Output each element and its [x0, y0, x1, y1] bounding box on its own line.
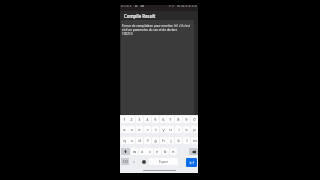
staticText: p: [193, 127, 196, 132]
button[interactable]: f: [144, 137, 151, 144]
staticText: s: [131, 138, 133, 143]
button[interactable]: h: [160, 137, 167, 144]
button[interactable]: n: [170, 148, 177, 155]
staticText: n: [172, 149, 175, 154]
button[interactable]: g: [152, 137, 159, 144]
staticText: r: [147, 127, 149, 132]
button[interactable]: i: [175, 126, 182, 133]
button[interactable]: u: [167, 126, 174, 133]
button[interactable]: Erreur de compilation pour emettre 'rit'…: [121, 20, 194, 118]
button[interactable]: b: [162, 148, 169, 155]
staticText: k: [177, 138, 180, 143]
staticText: j: [170, 138, 172, 143]
staticText: 4: [146, 117, 149, 122]
button[interactable]: c: [146, 148, 153, 155]
button[interactable]: s: [128, 137, 135, 144]
staticText: g: [154, 138, 157, 143]
button[interactable]: 0: [191, 116, 198, 123]
staticText: 5: [154, 117, 157, 122]
staticText: m: [193, 138, 197, 143]
button[interactable]: Shift: [121, 148, 130, 155]
staticText: 3: [138, 117, 141, 122]
button[interactable]: l: [183, 137, 190, 144]
button[interactable]: v: [154, 148, 161, 155]
staticText: e: [138, 127, 141, 132]
staticText: q: [123, 138, 126, 143]
button[interactable]: Enter: [186, 158, 197, 167]
button[interactable]: t: [152, 126, 159, 133]
staticText: t: [155, 127, 157, 132]
staticText: v: [156, 149, 159, 154]
staticText: f: [147, 138, 149, 143]
button[interactable]: Backspace: [189, 148, 198, 155]
staticText: w: [133, 149, 137, 154]
staticText: 2: [130, 117, 133, 122]
button[interactable]: w: [131, 148, 138, 155]
staticText: a: [123, 127, 126, 132]
button[interactable]: 1: [121, 116, 128, 123]
button[interactable]: q: [121, 137, 128, 144]
button[interactable]: 8: [175, 116, 182, 123]
staticText: c: [149, 149, 151, 154]
staticText: y: [162, 127, 165, 132]
button[interactable]: y: [160, 126, 167, 133]
staticText: d: [138, 138, 141, 143]
button[interactable]: r: [144, 126, 151, 133]
button[interactable]: Emoji keyboard: [140, 158, 147, 165]
button[interactable]: x: [139, 148, 146, 155]
button[interactable]: a: [121, 126, 128, 133]
button[interactable]: Espace: [149, 158, 178, 165]
staticText: u: [169, 127, 172, 132]
button[interactable]: 4: [144, 116, 151, 123]
staticText: 1: [123, 117, 126, 122]
button[interactable]: z: [128, 126, 135, 133]
button[interactable]: o: [183, 126, 190, 133]
staticText: b: [164, 149, 167, 154]
button[interactable]: Compile Result: [120, 11, 198, 24]
staticText: 0: [193, 117, 196, 122]
staticText: 123: [123, 160, 128, 164]
staticText: Compile Result: [124, 13, 156, 19]
staticText: o: [185, 127, 188, 132]
staticText: h: [162, 138, 165, 143]
button[interactable]: 123: [121, 158, 129, 165]
staticText: i: [178, 127, 180, 132]
button[interactable]: k: [175, 137, 182, 144]
staticText: 6: [162, 117, 165, 122]
staticText: 8: [177, 117, 180, 122]
staticText: l: [186, 138, 188, 143]
button[interactable]: 6: [160, 116, 167, 123]
staticText: z: [131, 127, 133, 132]
button[interactable]: 9: [183, 116, 190, 123]
button[interactable]: p: [191, 126, 198, 133]
staticText: 9: [185, 117, 188, 122]
button[interactable]: 3: [136, 116, 143, 123]
button[interactable]: j: [167, 137, 174, 144]
staticText: 7: [169, 117, 172, 122]
button[interactable]: 7: [167, 116, 174, 123]
button[interactable]: d: [136, 137, 143, 144]
button[interactable]: e: [136, 126, 143, 133]
staticText: Espace: [159, 160, 169, 164]
button[interactable]: 2: [128, 116, 135, 123]
staticText: x: [141, 149, 144, 154]
button[interactable]: 5: [152, 116, 159, 123]
button[interactable]: m: [191, 137, 198, 144]
staticText: Erreur de compilation pour emettre 'rit'…: [122, 24, 190, 36]
button[interactable]: Microphone: [131, 158, 136, 165]
